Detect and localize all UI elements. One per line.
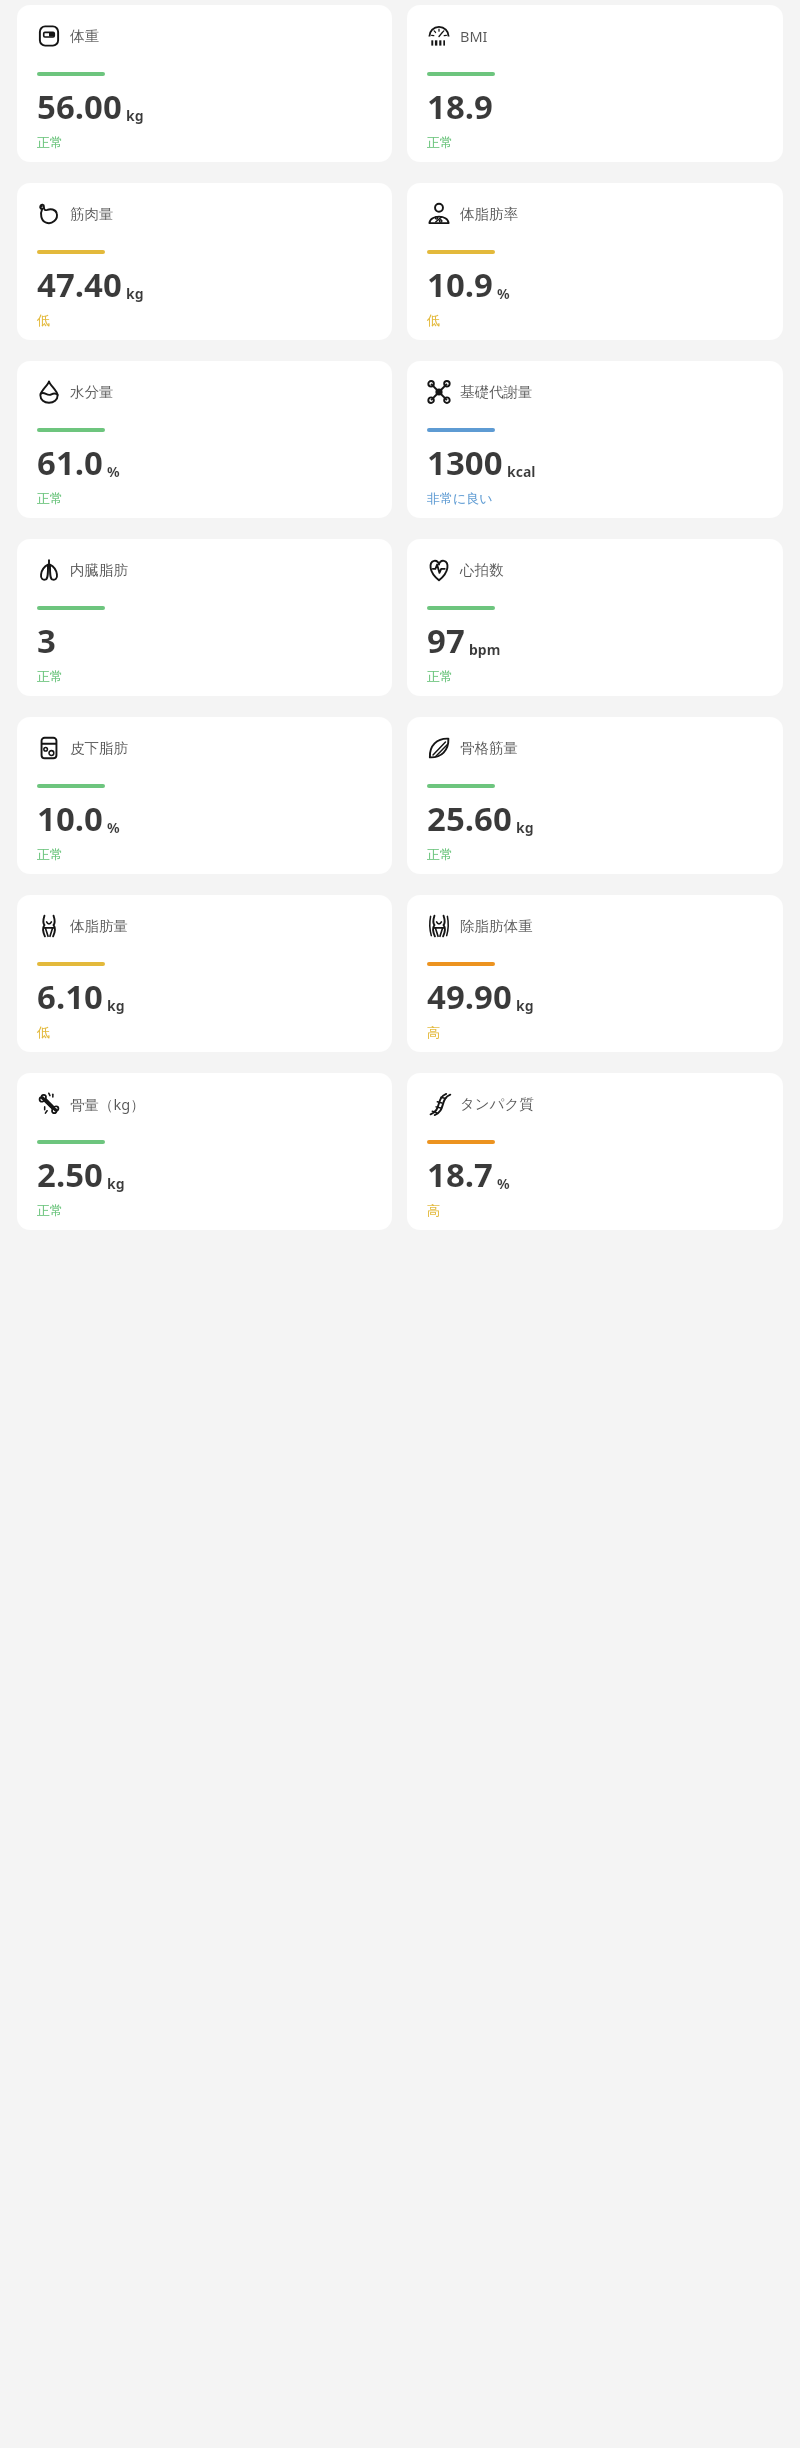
other: 体脂肪量 [37,914,61,938]
staticText: kg [107,1174,125,1193]
staticText: 高 [427,1202,440,1218]
button[interactable]: 内臓脂肪 [17,539,392,696]
other: BMI [427,24,451,48]
button[interactable]: 水分量 [17,361,392,518]
other: 皮下脂肪 [37,736,61,760]
staticText: 体脂肪量 [70,917,128,935]
staticText: 骨量（kg） [70,1094,145,1114]
button[interactable]: 骨量（kg） [17,1073,392,1230]
button[interactable]: 骨格筋量 [407,717,783,874]
staticText: 体脂肪率 [460,205,518,223]
staticText: 正常 [37,1202,63,1218]
other: 除脂肪体重 [427,914,451,938]
other: 筋肉量 [37,202,61,226]
button[interactable]: 筋肉量 [17,183,392,340]
staticText: % [107,462,120,481]
staticText: 正常 [37,846,63,862]
staticText: % [497,284,510,303]
staticText: 18.9 [427,84,493,129]
staticText: kg [516,996,534,1015]
button[interactable]: 除脂肪体重 [407,895,783,1052]
button[interactable]: 体脂肪率 [407,183,783,340]
staticText: kg [107,996,125,1015]
staticText: 低 [427,312,440,328]
other: 体重 [37,24,61,48]
staticText: kg [516,818,534,837]
staticText: 1300 [427,440,503,485]
button[interactable]: 心拍数 [407,539,783,696]
staticText: 2.50 [37,1152,103,1197]
staticText: 56.00 [37,84,122,129]
staticText: 皮下脂肪 [70,739,128,757]
staticText: 低 [37,1024,50,1040]
staticText: 骨格筋量 [460,739,518,757]
staticText: 正常 [427,846,453,862]
other: タンパク質 [427,1092,451,1116]
staticText: 筋肉量 [70,205,114,223]
staticText: 49.90 [427,974,512,1019]
button[interactable]: 皮下脂肪 [17,717,392,874]
button[interactable]: 体脂肪量 [17,895,392,1052]
button[interactable]: タンパク質 [407,1073,783,1230]
staticText: 61.0 [37,440,103,485]
staticText: 3 [37,618,56,663]
staticText: 内臓脂肪 [70,561,128,579]
staticText: 47.40 [37,262,122,307]
staticText: 基礎代謝量 [460,383,533,401]
staticText: 正常 [37,134,63,150]
staticText: % [107,818,120,837]
staticText: 体重 [70,27,99,45]
staticText: タンパク質 [460,1095,534,1113]
other: 基礎代謝量 [427,380,451,404]
staticText: 正常 [37,490,63,506]
staticText: kg [126,284,144,303]
other: 心拍数 [427,558,451,582]
staticText: 低 [37,312,50,328]
staticText: 除脂肪体重 [460,917,533,935]
staticText: 6.10 [37,974,103,1019]
other: 体脂肪率 [427,202,451,226]
staticText: 25.60 [427,796,512,841]
staticText: bpm [469,640,501,659]
staticText: kg [126,106,144,125]
staticText: 10.0 [37,796,103,841]
other: 内臓脂肪 [37,558,61,582]
staticText: 高 [427,1024,440,1040]
staticText: % [497,1174,510,1193]
other: 骨量（kg） [37,1092,61,1116]
staticText: 18.7 [427,1152,493,1197]
staticText: 非常に良い [427,490,493,506]
staticText: 正常 [427,668,453,684]
button[interactable]: 体重 [17,5,392,162]
staticText: BMI [460,26,488,46]
button[interactable]: 基礎代謝量 [407,361,783,518]
staticText: 心拍数 [460,561,504,579]
staticText: 97 [427,618,465,663]
staticText: 正常 [427,134,453,150]
staticText: 水分量 [70,383,114,401]
other: 骨格筋量 [427,736,451,760]
button[interactable]: BMI [407,5,783,162]
staticText: kcal [507,462,536,481]
other: 水分量 [37,380,61,404]
staticText: 10.9 [427,262,493,307]
staticText: 正常 [37,668,63,684]
